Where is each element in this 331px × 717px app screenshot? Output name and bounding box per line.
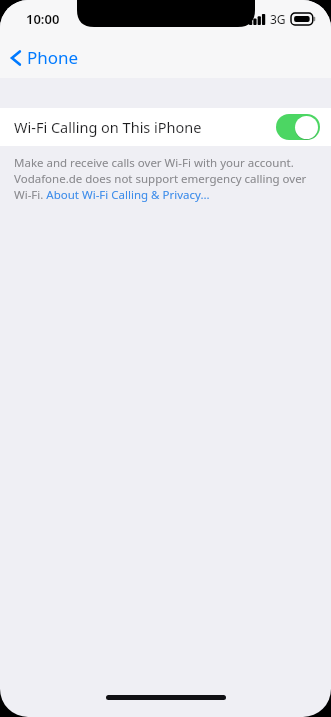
- button[interactable]: Wi-Fi Calling toggle, on: [276, 114, 320, 140]
- staticText: Phone: [27, 46, 79, 69]
- button[interactable]: Make and receive calls over Wi-Fi with y…: [14, 155, 309, 203]
- staticText: Make and receive calls over Wi-Fi with y…: [14, 155, 309, 203]
- staticText: 10:00: [26, 10, 60, 28]
- button[interactable]: Phone: [6, 42, 85, 73]
- button[interactable]: Wi-Fi Calling on This iPhone: [0, 108, 331, 146]
- staticText: 3G: [270, 11, 286, 27]
- staticText: Wi-Fi Calling on This iPhone: [14, 117, 202, 137]
